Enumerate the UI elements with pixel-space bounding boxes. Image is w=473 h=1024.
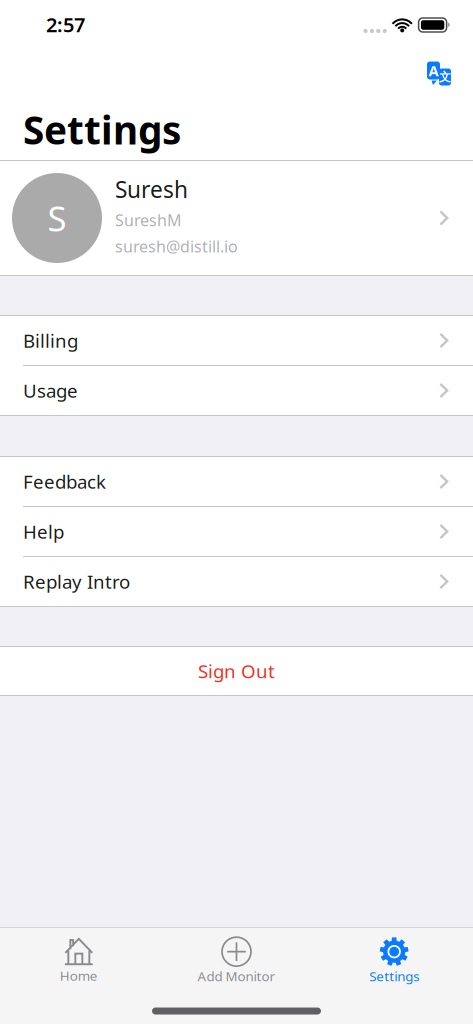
button[interactable]: Billing bbox=[0, 316, 473, 365]
button[interactable]: Home bbox=[0, 930, 158, 988]
staticText: Help bbox=[23, 519, 64, 544]
staticText: A bbox=[428, 61, 438, 80]
staticText: Usage bbox=[23, 378, 78, 403]
button[interactable]: Feedback bbox=[0, 457, 473, 506]
staticText: Sign Out bbox=[198, 659, 275, 683]
staticText: 2:57 bbox=[46, 11, 85, 38]
staticText: Home bbox=[60, 967, 98, 984]
button[interactable]: Replay Intro bbox=[0, 557, 473, 606]
staticText: Settings bbox=[369, 967, 419, 985]
staticText: Suresh bbox=[115, 174, 188, 204]
staticText: 文 bbox=[439, 70, 451, 84]
button[interactable]: S bbox=[0, 161, 473, 275]
staticText: Billing bbox=[23, 328, 78, 353]
staticText: Replay Intro bbox=[23, 569, 130, 594]
staticText: S bbox=[47, 195, 66, 241]
button[interactable]: Settings bbox=[315, 930, 473, 988]
button[interactable]: Usage bbox=[0, 366, 473, 415]
button[interactable]: Help bbox=[0, 507, 473, 556]
staticText: Feedback bbox=[23, 469, 106, 494]
staticText: Settings bbox=[23, 104, 181, 155]
button[interactable]: Sign Out bbox=[0, 647, 473, 695]
staticText: Add Monitor bbox=[197, 967, 275, 985]
button[interactable]: Add Monitor bbox=[158, 930, 315, 988]
staticText: SureshM bbox=[115, 209, 182, 230]
button[interactable]: Translate bbox=[427, 61, 451, 85]
staticText: suresh@distill.io bbox=[115, 236, 238, 257]
